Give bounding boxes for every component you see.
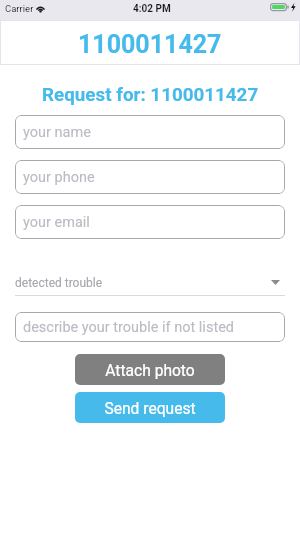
staticText: Send request (104, 400, 196, 418)
staticText: your email (23, 214, 90, 231)
staticText: 1100011427 (78, 30, 222, 59)
staticText: Carrier (5, 3, 34, 14)
staticText: Request for: 1100011427 (42, 84, 259, 106)
button[interactable]: your email (15, 205, 285, 239)
staticText: your name (23, 124, 91, 141)
button[interactable]: your name (15, 115, 285, 149)
button[interactable]: detected trouble (15, 271, 285, 296)
staticText: your phone (23, 169, 95, 186)
button[interactable]: describe your trouble if not listed (15, 312, 285, 342)
button[interactable]: Send request (75, 392, 225, 423)
button[interactable]: your phone (15, 160, 285, 194)
staticText: 4:02 PM (133, 3, 171, 15)
button[interactable]: Attach photo (75, 354, 225, 385)
staticText: detected trouble (15, 276, 103, 290)
staticText: describe your trouble if not listed (23, 319, 234, 336)
staticText: Attach photo (105, 362, 195, 380)
